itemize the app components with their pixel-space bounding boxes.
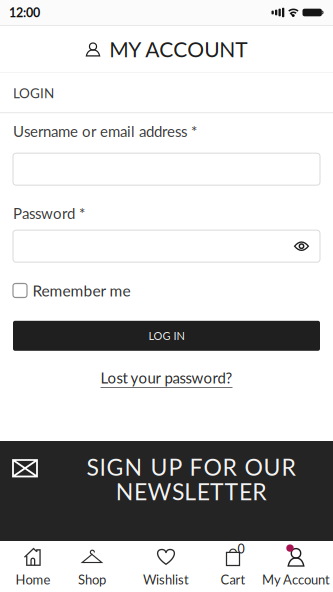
staticText: Wishlist bbox=[143, 572, 189, 587]
button[interactable]: Remember me bbox=[13, 281, 130, 300]
staticText: Username or email address * bbox=[13, 122, 197, 140]
staticText: LOGIN bbox=[13, 85, 54, 101]
button[interactable]: Shop bbox=[78, 547, 106, 587]
staticText: 0 bbox=[237, 541, 244, 556]
staticText: Password * bbox=[13, 204, 85, 222]
staticText: Lost your password? bbox=[100, 369, 232, 387]
staticText: LOG IN bbox=[148, 329, 184, 342]
staticText: Home bbox=[15, 572, 50, 587]
staticText: Cart bbox=[220, 572, 245, 587]
button[interactable]: Lost your password? bbox=[100, 369, 232, 387]
button[interactable]: My Account bbox=[262, 547, 330, 587]
staticText: Shop bbox=[78, 572, 106, 587]
staticText: 12:00 bbox=[9, 5, 40, 20]
staticText: MY ACCOUNT bbox=[109, 36, 247, 62]
button[interactable]: LOG IN bbox=[13, 321, 320, 351]
button[interactable]: Wishlist bbox=[143, 547, 189, 587]
staticText: SIGN UP FOR OUR bbox=[86, 453, 295, 481]
button[interactable]: 0 bbox=[220, 547, 245, 587]
staticText: Remember me bbox=[32, 281, 130, 300]
staticText: NEWSLETTER bbox=[116, 478, 266, 505]
button[interactable]: SIGN UP FOR OUR bbox=[0, 441, 333, 541]
staticText: My Account bbox=[262, 572, 330, 587]
button[interactable] bbox=[294, 241, 320, 251]
button[interactable]: Home bbox=[15, 547, 50, 587]
